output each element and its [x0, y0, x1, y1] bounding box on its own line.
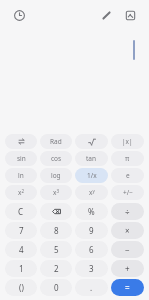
staticText: +/−	[123, 188, 133, 197]
button[interactable]	[75, 134, 108, 149]
button[interactable]: .	[75, 279, 108, 296]
staticText: ÷	[125, 206, 130, 217]
staticText: e	[126, 171, 130, 180]
button[interactable]: x3	[40, 185, 72, 200]
button[interactable]: sin	[5, 151, 37, 166]
staticText: C	[18, 206, 24, 217]
button[interactable]: %	[75, 203, 108, 220]
button[interactable]: 3	[75, 260, 108, 277]
button[interactable]: Screenshot	[120, 5, 140, 25]
staticText: xy	[89, 188, 95, 197]
staticText: tan	[86, 154, 97, 163]
button[interactable]: cos	[40, 151, 72, 166]
staticText: ×	[125, 225, 130, 236]
staticText: 8	[54, 225, 59, 236]
staticText: π	[125, 154, 130, 163]
button[interactable]: x2	[5, 185, 37, 200]
button[interactable]: ×	[111, 222, 144, 239]
button[interactable]: 1	[5, 260, 37, 277]
staticText: +	[125, 263, 130, 274]
staticText: x2	[18, 188, 25, 197]
staticText: 7	[19, 225, 24, 236]
staticText: 3	[89, 263, 94, 274]
staticText: log	[51, 171, 61, 180]
button[interactable]: 1/x	[75, 168, 108, 183]
staticText: 5	[54, 244, 59, 255]
button[interactable]: =	[111, 279, 144, 296]
staticText: Rad	[50, 137, 62, 146]
button[interactable]: 8	[40, 222, 72, 239]
staticText: x3	[53, 188, 60, 197]
button[interactable]: 9	[75, 222, 108, 239]
staticText: .	[90, 282, 93, 293]
button[interactable]: log	[40, 168, 72, 183]
staticText: =	[125, 282, 130, 293]
button[interactable]: π	[111, 151, 144, 166]
button[interactable]: e	[111, 168, 144, 183]
staticText: 1	[19, 263, 24, 274]
button[interactable]: 7	[5, 222, 37, 239]
staticText: 4	[19, 244, 24, 255]
button[interactable]: ()	[5, 279, 37, 296]
staticText: 9	[89, 225, 94, 236]
staticText: −	[125, 244, 130, 255]
button[interactable]: xy	[75, 185, 108, 200]
button[interactable]: 0	[40, 279, 72, 296]
button[interactable]: +/−	[111, 185, 144, 200]
staticText: 0	[54, 282, 59, 293]
staticText: ln	[18, 171, 24, 180]
button[interactable]: History	[9, 5, 29, 25]
button[interactable]: 6	[75, 241, 108, 258]
button[interactable]: tan	[75, 151, 108, 166]
staticText: 2	[54, 263, 59, 274]
staticText: ()	[19, 282, 24, 293]
button[interactable]	[5, 134, 37, 149]
button[interactable]: |x|	[111, 134, 144, 149]
button[interactable]: −	[111, 241, 144, 258]
button[interactable]: Rad	[40, 134, 72, 149]
button[interactable]: C	[5, 203, 37, 220]
button[interactable]: 4	[5, 241, 37, 258]
staticText: 1/x	[87, 171, 97, 180]
button[interactable]: 2	[40, 260, 72, 277]
staticText: %	[88, 206, 95, 217]
staticText: cos	[51, 154, 62, 163]
staticText: |x|	[122, 137, 133, 146]
button[interactable]: ln	[5, 168, 37, 183]
button[interactable]: 5	[40, 241, 72, 258]
button[interactable]: ÷	[111, 203, 144, 220]
button[interactable]: +	[111, 260, 144, 277]
staticText: sin	[17, 154, 26, 163]
button[interactable]: Delete	[40, 203, 72, 220]
staticText: 6	[89, 244, 94, 255]
button[interactable]: Edit	[96, 5, 116, 25]
